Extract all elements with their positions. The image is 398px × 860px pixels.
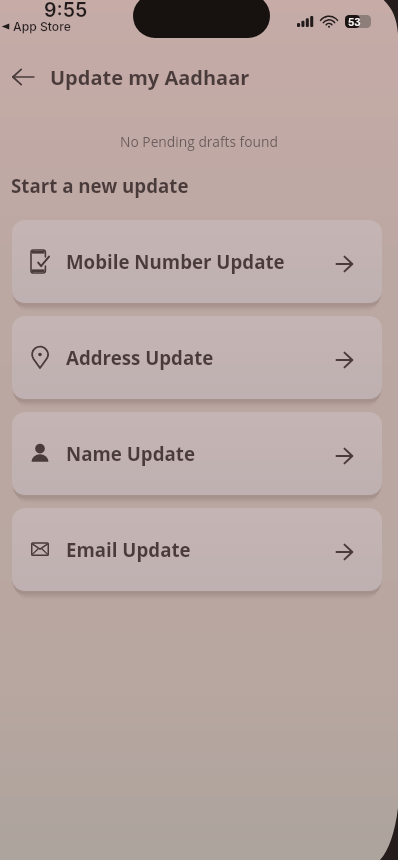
button[interactable]: Mobile Number Update xyxy=(12,220,382,303)
button[interactable]: Name Update xyxy=(12,412,382,495)
staticText: 9:55 xyxy=(44,0,88,22)
button[interactable]: Email Update xyxy=(12,508,382,591)
staticText: Update my Aadhaar xyxy=(50,64,250,91)
staticText: App Store xyxy=(13,19,71,34)
staticText: Email Update xyxy=(66,537,191,562)
staticText: Name Update xyxy=(66,441,195,466)
staticText: Mobile Number Update xyxy=(66,249,285,274)
staticText: No Pending drafts found xyxy=(0,132,398,151)
staticText: Address Update xyxy=(66,345,214,370)
staticText: Start a new update xyxy=(11,173,189,198)
button[interactable]: Address Update xyxy=(12,316,382,399)
button[interactable]: Back xyxy=(8,62,38,92)
staticText: 53 xyxy=(348,16,361,28)
